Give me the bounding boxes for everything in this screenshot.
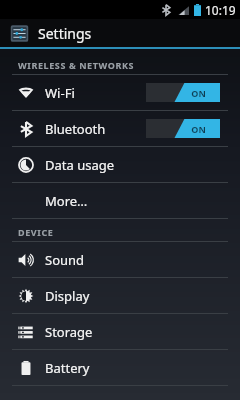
- staticText: Settings: [38, 24, 92, 43]
- staticText: WIRELESS & NETWORKS: [18, 59, 135, 71]
- staticText: Wi-Fi: [45, 84, 75, 102]
- staticText: ON: [191, 123, 206, 135]
- button[interactable]: Storage: [0, 314, 240, 349]
- button[interactable]: Display: [0, 278, 240, 313]
- button[interactable]: Bluetooth: [0, 111, 240, 146]
- staticText: ON: [191, 87, 206, 99]
- button[interactable]: Sound: [0, 242, 240, 277]
- staticText: Storage: [45, 323, 93, 341]
- button[interactable]: Toggle on: [146, 119, 220, 138]
- staticText: 10:19: [205, 2, 236, 18]
- staticText: Sound: [45, 251, 85, 269]
- button[interactable]: Toggle on: [146, 83, 220, 102]
- button[interactable]: Data usage: [0, 147, 240, 182]
- staticText: Display: [45, 287, 90, 305]
- staticText: Battery: [45, 359, 90, 377]
- button[interactable]: More…: [0, 183, 240, 218]
- staticText: DEVICE: [18, 226, 54, 238]
- button[interactable]: Wi-Fi: [0, 75, 240, 110]
- staticText: More…: [45, 192, 88, 210]
- staticText: Bluetooth: [45, 120, 106, 138]
- button[interactable]: Battery: [0, 350, 240, 385]
- staticText: Data usage: [45, 156, 115, 174]
- button[interactable]: Settings: [0, 19, 240, 47]
